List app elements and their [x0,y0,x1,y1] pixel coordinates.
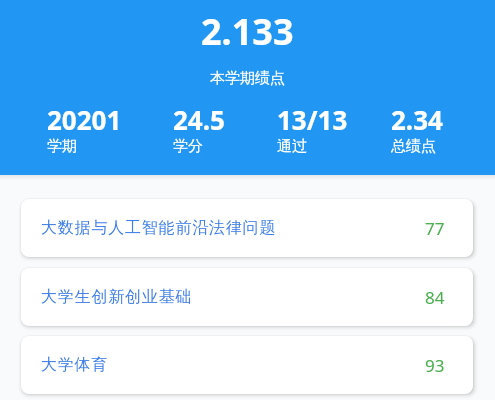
staticText: 大学生创新创业基础 [41,287,193,307]
staticText: 93 [425,354,445,377]
staticText: 学期 [47,137,77,156]
staticText: 20201 [47,102,122,137]
staticText: 24.5 [173,102,225,137]
button[interactable]: 大数据与人工智能前沿法律问题 [21,199,473,257]
staticText: 学分 [173,137,203,156]
staticText: 77 [425,217,445,240]
staticText: 2.34 [391,102,443,137]
staticText: 通过 [277,137,307,156]
staticText: 2.133 [201,7,294,56]
staticText: 本学期绩点 [210,69,285,88]
staticText: 总绩点 [391,137,436,156]
staticText: 大数据与人工智能前沿法律问题 [41,218,277,238]
staticText: 13/13 [277,102,348,137]
staticText: 84 [425,286,445,309]
button[interactable]: 大学生创新创业基础 [21,268,473,326]
staticText: 大学体育 [41,355,109,375]
button[interactable]: 大学体育 [21,336,473,394]
